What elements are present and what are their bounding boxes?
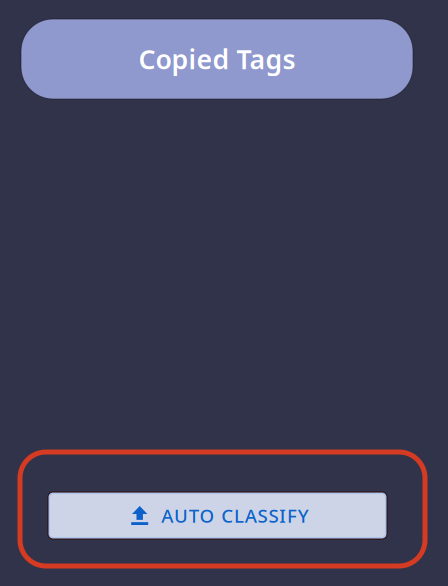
button[interactable]: Copied Tags [21,19,413,99]
staticText: Copied Tags [138,41,295,77]
staticText: AUTO CLASSIFY [161,503,309,528]
button[interactable]: AUTO CLASSIFY [48,492,387,539]
